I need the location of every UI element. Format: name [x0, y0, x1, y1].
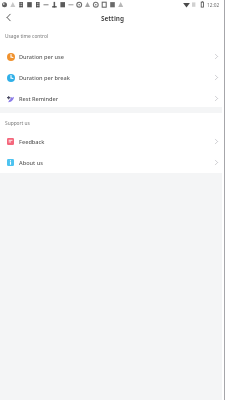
- staticText: Usage time control: [5, 33, 49, 40]
- staticText: Duration per use: [19, 53, 65, 61]
- button[interactable]: Feedback: [0, 131, 222, 152]
- staticText: Support us: [5, 120, 30, 127]
- staticText: About us: [19, 159, 43, 167]
- staticText: Duration per break: [19, 74, 70, 82]
- button[interactable]: Duration per use: [0, 46, 222, 67]
- button[interactable]: Rest Reminder: [0, 88, 222, 109]
- staticText: 12:02: [207, 2, 220, 9]
- button[interactable]: Back: [1, 10, 15, 24]
- staticText: Rest Reminder: [19, 95, 59, 103]
- button[interactable]: Duration per break: [0, 67, 222, 88]
- staticText: Feedback: [19, 138, 45, 146]
- button[interactable]: About us: [0, 152, 222, 173]
- staticText: Setting: [101, 14, 124, 23]
